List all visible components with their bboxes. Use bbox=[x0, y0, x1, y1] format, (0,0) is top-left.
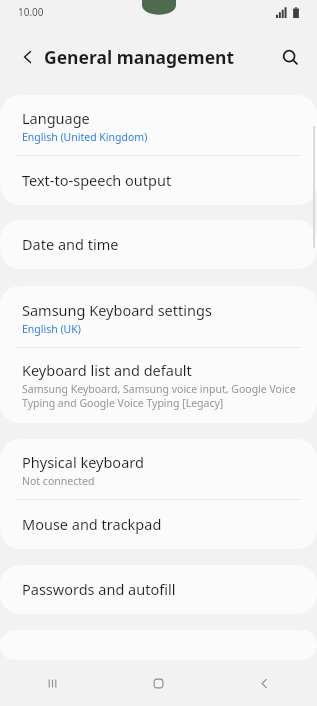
staticText: Passwords and autofill bbox=[22, 579, 176, 599]
button[interactable]: Physical keyboard bbox=[0, 439, 317, 499]
button[interactable]: Mouse and trackpad bbox=[0, 500, 317, 549]
staticText: Language bbox=[22, 108, 90, 128]
staticText: Text-to-speech output bbox=[22, 170, 172, 190]
staticText: English (United Kingdom) bbox=[22, 130, 148, 144]
button[interactable]: Language bbox=[0, 95, 317, 155]
staticText: General management bbox=[44, 45, 235, 69]
button[interactable]: Home bbox=[105, 660, 211, 706]
button[interactable]: Samsung Keyboard settings bbox=[0, 286, 317, 347]
button[interactable]: Date and time bbox=[0, 220, 317, 269]
staticText: Not connected bbox=[22, 474, 95, 488]
button[interactable]: Text-to-speech output bbox=[0, 156, 317, 205]
button[interactable]: Navigate up bbox=[12, 41, 44, 73]
button[interactable]: Keyboard list and default bbox=[0, 348, 317, 423]
button[interactable]: Search bbox=[273, 40, 307, 74]
staticText: Samsung Keyboard settings bbox=[22, 300, 212, 320]
staticText: Date and time bbox=[22, 234, 119, 254]
button[interactable]: Passwords and autofill bbox=[0, 565, 317, 614]
staticText: 10.00 bbox=[18, 5, 44, 19]
staticText: English (UK) bbox=[22, 322, 81, 336]
button[interactable]: Back bbox=[211, 660, 317, 706]
staticText: Physical keyboard bbox=[22, 452, 144, 472]
button[interactable]: Recent apps bbox=[0, 660, 105, 706]
staticText: Mouse and trackpad bbox=[22, 514, 162, 534]
staticText: Keyboard list and default bbox=[22, 360, 192, 380]
staticText: Samsung Keyboard, Samsung voice input, G… bbox=[22, 382, 301, 410]
